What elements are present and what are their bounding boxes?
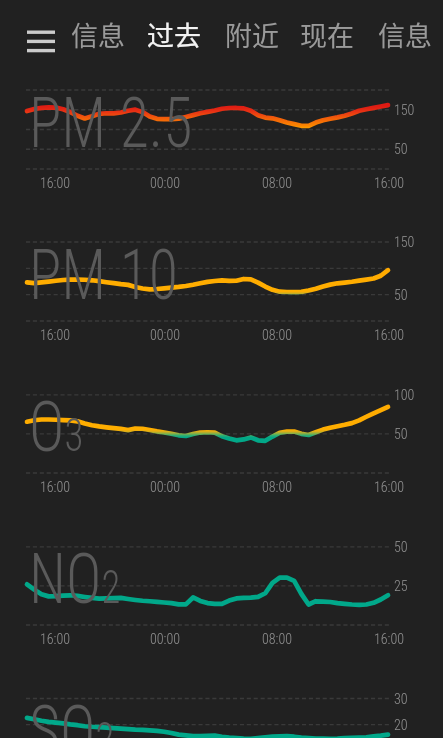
staticText: 16:00	[40, 175, 71, 191]
staticText: 00:00	[150, 631, 181, 647]
staticText: 50	[394, 287, 408, 303]
staticText: 100	[394, 387, 415, 403]
staticText: 150	[394, 102, 415, 118]
staticText: 50	[394, 426, 408, 442]
staticText: SO2	[29, 689, 114, 738]
staticText: 50	[394, 141, 408, 157]
staticText: 16:00	[40, 479, 71, 495]
staticText: 08:00	[262, 175, 293, 191]
staticText: 08:00	[262, 327, 293, 343]
staticText: 现在	[300, 15, 354, 51]
staticText: 00:00	[150, 479, 181, 495]
staticText: O3	[29, 385, 84, 465]
staticText: 50	[394, 539, 408, 555]
staticText: 00:00	[150, 327, 181, 343]
button[interactable]: 附近	[214, 15, 290, 51]
button[interactable]: 信息	[60, 15, 136, 51]
staticText: NO2	[29, 537, 121, 617]
staticText: 08:00	[262, 631, 293, 647]
staticText: 16:00	[40, 631, 71, 647]
button[interactable]: Menu	[10, 8, 72, 58]
staticText: 信息	[71, 15, 125, 51]
staticText: 08:00	[262, 479, 293, 495]
staticText: 16:00	[374, 631, 405, 647]
staticText: PM 10	[29, 233, 179, 313]
button[interactable]: 信息	[367, 15, 443, 51]
staticText: PM 2.5	[29, 81, 193, 161]
staticText: 00:00	[150, 175, 181, 191]
staticText: 16:00	[374, 479, 405, 495]
staticText: 信息	[378, 15, 432, 51]
button[interactable]: 现在	[289, 15, 365, 51]
staticText: 150	[394, 234, 415, 250]
staticText: 16:00	[40, 327, 71, 343]
button[interactable]: 过去	[136, 15, 212, 51]
staticText: 25	[394, 578, 408, 594]
staticText: 30	[394, 691, 408, 707]
staticText: 附近	[225, 15, 279, 51]
staticText: 过去	[147, 15, 201, 51]
staticText: 16:00	[374, 327, 405, 343]
staticText: 20	[394, 717, 408, 733]
staticText: 16:00	[374, 175, 405, 191]
